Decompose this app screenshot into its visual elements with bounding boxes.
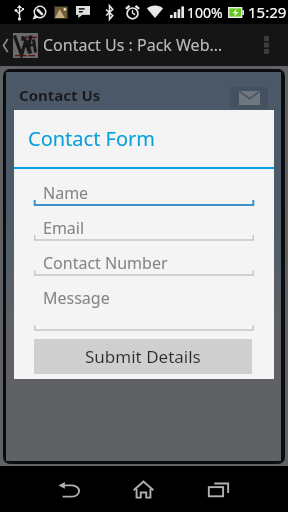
- staticText: Contact Us : Pack Web…: [43, 34, 223, 56]
- button[interactable]: Recent apps: [181, 466, 256, 512]
- staticText: Contact Us: [19, 85, 101, 105]
- button[interactable]: Submit Details: [34, 339, 252, 374]
- staticText: Contact Form: [28, 125, 155, 152]
- staticText: Contact Number: [43, 252, 168, 274]
- button[interactable]: Name: [34, 175, 254, 207]
- button[interactable]: Contact Number: [34, 245, 254, 277]
- button[interactable]: Email: [230, 87, 268, 109]
- button[interactable]: Email: [34, 210, 254, 242]
- button[interactable]: Back: [32, 466, 106, 512]
- staticText: 15:29: [248, 2, 287, 22]
- button[interactable]: More options: [253, 24, 279, 66]
- button[interactable]: Home: [106, 466, 181, 512]
- staticText: Message: [43, 287, 110, 309]
- staticText: Submit Details: [85, 345, 201, 368]
- staticText: 100%: [187, 3, 223, 22]
- staticText: Email: [43, 217, 85, 239]
- button[interactable]: Navigate up: [0, 24, 42, 66]
- staticText: Name: [43, 182, 89, 204]
- button[interactable]: Message: [34, 280, 254, 332]
